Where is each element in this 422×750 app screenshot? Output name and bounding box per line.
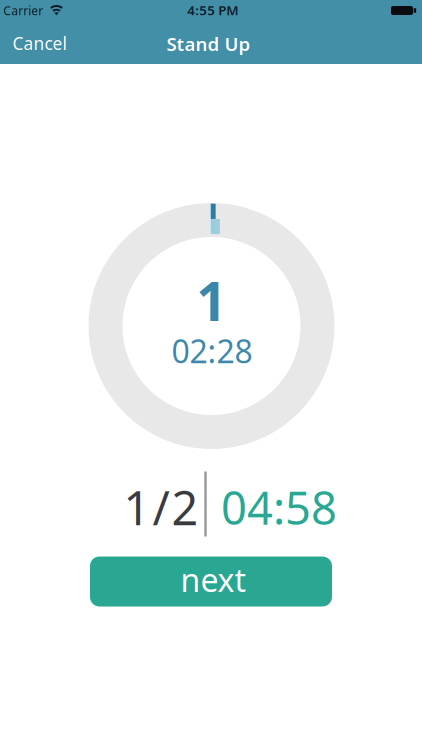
staticText: Stand Up [166, 31, 250, 56]
staticText: 02:28 [171, 330, 252, 372]
staticText: next [180, 558, 246, 601]
button[interactable]: Cancel [12, 32, 66, 55]
staticText: 2 [172, 476, 199, 538]
staticText: 1 [196, 265, 227, 336]
staticText: 1 [124, 476, 151, 538]
staticText: 04:58 [221, 477, 337, 537]
staticText: Carrier [3, 2, 43, 18]
staticText: 4:55 PM [187, 1, 238, 19]
staticText: Cancel [12, 32, 66, 55]
button[interactable]: next [90, 556, 332, 606]
staticText: / [153, 476, 170, 538]
